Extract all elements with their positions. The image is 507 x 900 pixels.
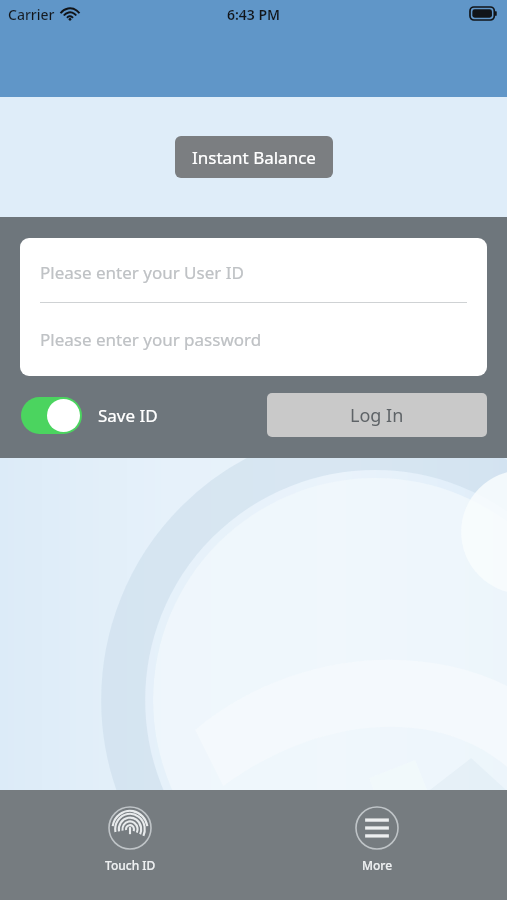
- button[interactable]: Please enter your password: [20, 303, 487, 376]
- staticText: Save ID: [98, 404, 158, 427]
- staticText: Instant Balance: [192, 146, 316, 169]
- staticText: Please enter your password: [40, 328, 262, 351]
- staticText: More: [362, 857, 393, 873]
- button[interactable]: Touch ID: [88, 806, 172, 873]
- staticText: Log In: [350, 403, 404, 428]
- button[interactable]: Save ID: [21, 397, 158, 434]
- button[interactable]: Instant Balance: [175, 136, 333, 178]
- button[interactable]: More: [335, 806, 419, 873]
- button[interactable]: Log In: [267, 393, 487, 437]
- staticText: Please enter your User ID: [40, 261, 244, 284]
- staticText: Touch ID: [105, 857, 156, 873]
- button[interactable]: Please enter your User ID: [20, 238, 487, 302]
- staticText: Carrier: [8, 5, 55, 24]
- staticText: 6:43 PM: [0, 5, 507, 24]
